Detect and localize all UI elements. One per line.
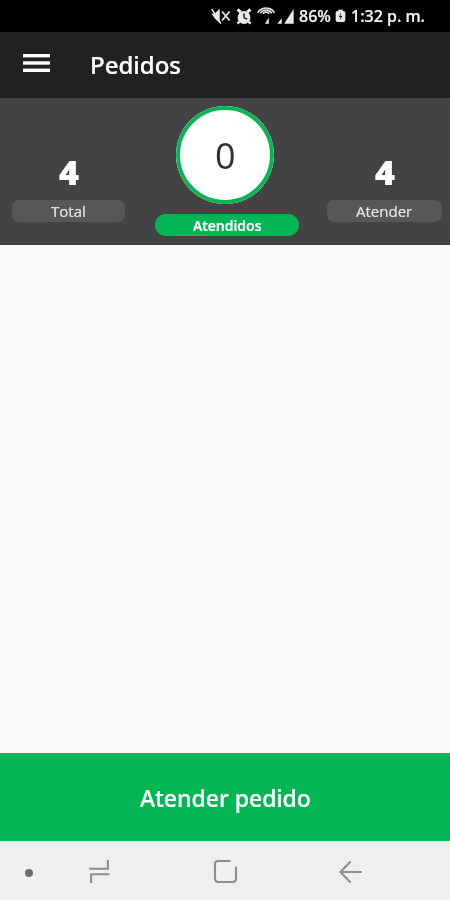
staticText: 0 — [215, 131, 236, 180]
staticText: 1:32 p. m. — [351, 5, 425, 27]
button[interactable]: Switch apps — [36, 842, 162, 900]
staticText: Atender pedido — [140, 782, 311, 813]
staticText: Pedidos — [90, 48, 181, 81]
button[interactable]: Recent apps — [162, 842, 288, 900]
staticText: Atender — [356, 201, 413, 221]
staticText: Atendidos — [193, 216, 262, 235]
button[interactable]: Atender — [327, 200, 442, 222]
button[interactable]: Total — [12, 200, 125, 222]
button[interactable]: Atender pedido — [0, 753, 450, 841]
staticText: 4 — [59, 149, 79, 195]
staticText: 4 — [375, 149, 395, 195]
button[interactable]: Atendidos — [155, 214, 299, 236]
staticText: Total — [51, 201, 86, 221]
button[interactable]: Open navigation menu — [12, 39, 60, 87]
button[interactable]: 4 — [12, 98, 125, 245]
button[interactable]: 4 — [327, 98, 442, 245]
button[interactable]: Notification indicator — [10, 854, 47, 891]
button[interactable]: Back — [288, 842, 414, 900]
staticText: 86% — [299, 5, 331, 27]
